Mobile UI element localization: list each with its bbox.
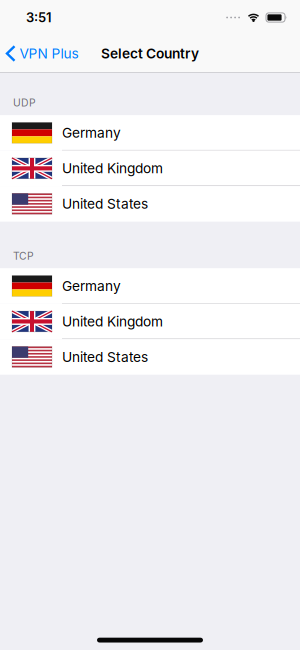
staticText: United Kingdom [62,160,163,177]
button[interactable]: United States [0,186,300,222]
staticText: VPN Plus [19,45,78,62]
button[interactable]: United States [0,339,300,375]
button[interactable]: United Kingdom [0,304,300,339]
staticText: Select Country [101,45,199,62]
button[interactable]: United Kingdom [0,151,300,186]
staticText: United States [62,196,148,212]
button[interactable]: Germany [0,268,300,304]
staticText: TCP [13,250,34,262]
staticText: United Kingdom [62,313,163,330]
button[interactable]: Germany [0,115,300,151]
staticText: Germany [62,125,121,141]
staticText: Germany [62,278,121,294]
button[interactable]: Back [0,45,78,62]
staticText: 3:51 [26,10,51,25]
staticText: United States [62,349,148,365]
staticText: UDP [13,96,36,109]
